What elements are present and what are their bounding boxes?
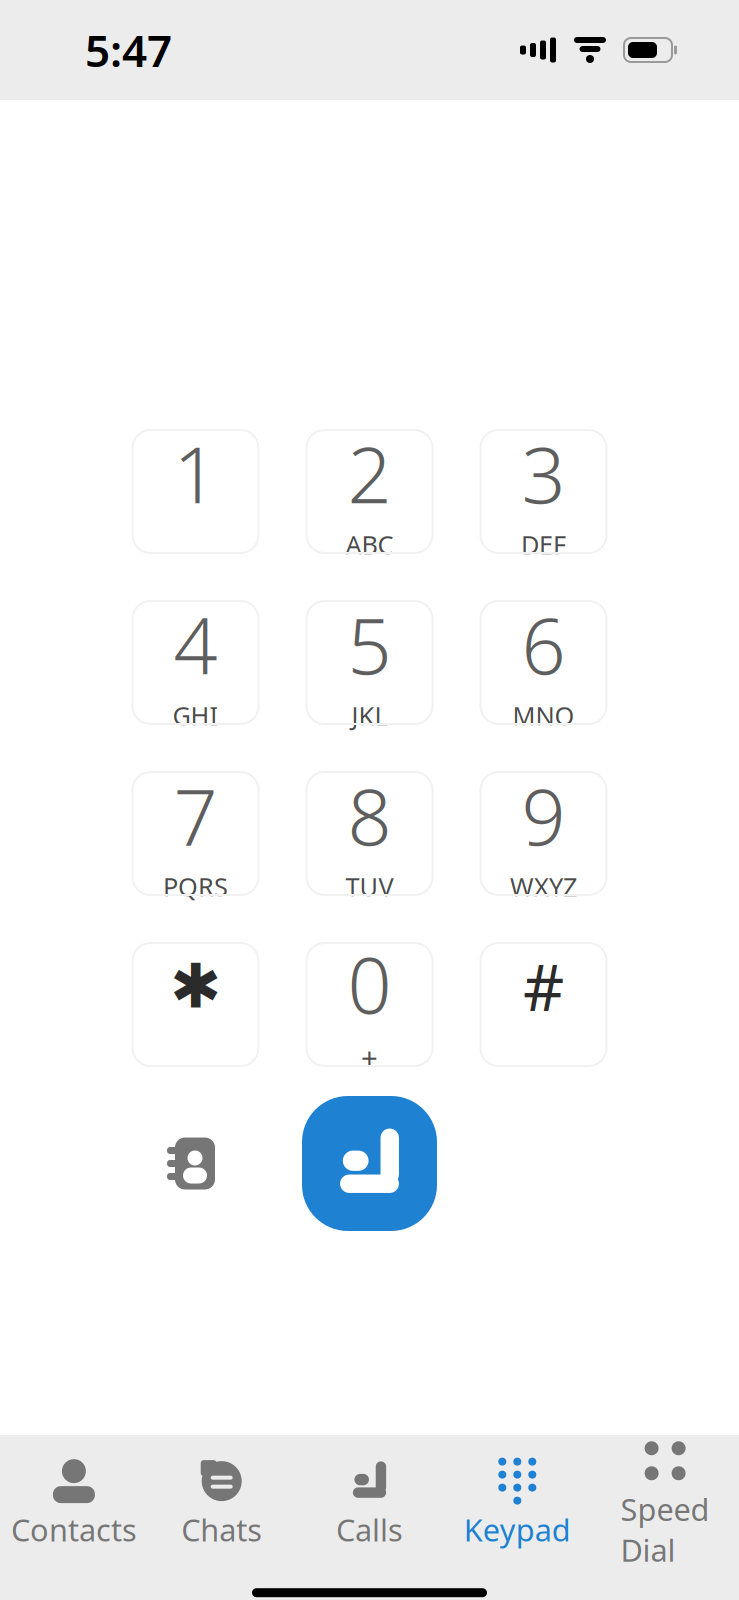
staticText: 3 — [521, 422, 565, 524]
button[interactable]: Contacts — [128, 1096, 254, 1231]
staticText: 5 — [347, 593, 391, 695]
button[interactable]: 0 — [306, 943, 432, 1066]
button[interactable]: 3 — [480, 430, 606, 553]
button[interactable]: 6 — [480, 601, 606, 724]
staticText: ABC — [345, 527, 393, 561]
button[interactable]: 7 — [132, 772, 258, 895]
button[interactable]: Speed Dial — [591, 1424, 739, 1580]
button[interactable]: Call — [302, 1096, 437, 1231]
button[interactable]: 9 — [480, 772, 606, 895]
button[interactable]: ✱ — [132, 943, 258, 1066]
button[interactable]: Calls — [296, 1444, 443, 1560]
staticText: 2 — [347, 422, 391, 524]
button[interactable]: 4 — [132, 601, 258, 724]
staticText: # — [523, 944, 564, 1029]
button[interactable]: Chats — [148, 1444, 296, 1560]
staticText: + — [361, 1038, 378, 1077]
staticText: Keypad — [464, 1509, 571, 1550]
staticText: GHI — [172, 698, 218, 732]
staticText: 4 — [173, 593, 217, 695]
button[interactable]: Contacts — [0, 1444, 148, 1560]
staticText: 9 — [521, 764, 565, 866]
staticText: 5:47 — [85, 21, 172, 79]
staticText: TUV — [345, 869, 393, 903]
staticText: PQRS — [163, 869, 228, 903]
staticText — [192, 527, 199, 561]
staticText: JKL — [351, 698, 387, 732]
staticText: Contacts — [11, 1509, 137, 1550]
staticText: Speed Dial — [621, 1489, 710, 1570]
staticText: ✱ — [170, 951, 221, 1021]
staticText: WXYZ — [510, 869, 577, 903]
staticText: Chats — [181, 1509, 262, 1550]
button[interactable]: Keypad — [443, 1444, 591, 1560]
staticText: Calls — [336, 1509, 403, 1550]
button[interactable]: 1 — [132, 430, 258, 553]
staticText: 7 — [173, 764, 217, 866]
button[interactable]: 5 — [306, 601, 432, 724]
button[interactable]: # — [480, 943, 606, 1066]
button[interactable]: 2 — [306, 430, 432, 553]
staticText: 8 — [347, 764, 391, 866]
staticText: 0 — [347, 932, 391, 1035]
staticText: DEF — [521, 527, 566, 561]
button[interactable]: 8 — [306, 772, 432, 895]
staticText: 6 — [521, 593, 565, 695]
staticText: MNO — [512, 698, 574, 732]
staticText: 1 — [173, 422, 217, 524]
